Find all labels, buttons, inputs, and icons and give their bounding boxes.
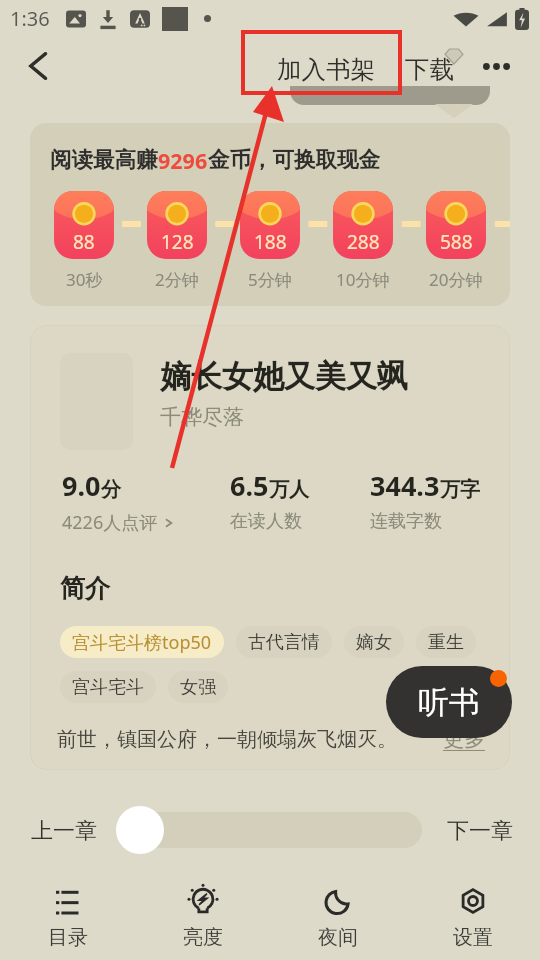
staticText: 夜间	[318, 925, 358, 950]
button[interactable]: More options	[476, 46, 516, 86]
staticText: 金币，可换取现金	[208, 146, 380, 173]
staticText: 宫斗宅斗	[72, 676, 144, 699]
staticText: 嫡女	[356, 631, 392, 654]
staticText: 128	[161, 229, 194, 255]
button[interactable]: 更多	[443, 726, 485, 752]
button[interactable]: 宫斗宅斗榜top50	[60, 626, 224, 658]
button[interactable]: 宫斗宅斗	[60, 671, 156, 703]
staticText: 588	[440, 229, 473, 255]
staticText: 20分钟	[429, 268, 483, 291]
staticText: 阅读最高赚	[50, 146, 158, 173]
staticText: 目录	[48, 925, 88, 950]
button[interactable]: 目录	[0, 880, 135, 958]
button[interactable]: 古代言情	[236, 626, 332, 658]
staticText: 加入书架	[277, 54, 375, 85]
button[interactable]: 下载	[399, 46, 460, 93]
staticText: 千桦尽落	[160, 404, 244, 430]
staticText: 10分钟	[336, 268, 390, 291]
staticText: 分	[101, 477, 121, 502]
button[interactable]: 嫡女	[344, 626, 404, 658]
button[interactable]: 阅读最高赚	[30, 123, 510, 306]
button[interactable]: 夜间	[270, 880, 405, 958]
staticText: 女强	[180, 676, 216, 699]
button[interactable]: 女强	[168, 671, 228, 703]
staticText: 在读人数	[230, 510, 302, 533]
staticText: 9.0	[62, 467, 101, 504]
button[interactable]: 下一章	[441, 811, 519, 851]
staticText: 上一章	[31, 817, 97, 845]
staticText: 288	[347, 229, 380, 255]
staticText: 连载字数	[370, 510, 442, 533]
staticText: 简介	[60, 573, 110, 604]
staticText: 下一章	[447, 817, 513, 845]
staticText: 万字	[440, 477, 480, 502]
staticText: 亮度	[183, 925, 223, 950]
button[interactable]: 上一章	[25, 811, 103, 851]
staticText: 5分钟	[248, 268, 292, 291]
staticText: 188	[254, 229, 287, 255]
staticText: 万人	[269, 477, 309, 502]
button[interactable]: 设置	[405, 880, 540, 958]
staticText: 6.5	[230, 467, 269, 504]
staticText: 古代言情	[248, 631, 320, 654]
staticText: 重生	[428, 631, 464, 654]
staticText: 嫡长女她又美又飒	[160, 357, 408, 396]
staticText: 88	[73, 229, 95, 255]
staticText: 344.3	[370, 467, 440, 504]
staticText: 前世，镇国公府，一朝倾塌灰飞烟灭。	[57, 727, 397, 752]
button[interactable]: 亮度	[135, 880, 270, 958]
button[interactable]: 重生	[416, 626, 476, 658]
staticText: 9296	[158, 146, 208, 175]
staticText: 设置	[453, 925, 493, 950]
staticText: 4226人点评	[62, 510, 158, 535]
staticText: 宫斗宅斗榜top50	[72, 630, 212, 655]
staticText: 2分钟	[155, 268, 199, 291]
button[interactable]: Chapter progress	[116, 806, 164, 854]
button[interactable]: 加入书架	[271, 46, 381, 93]
staticText: 下载	[405, 54, 454, 85]
staticText: 听书	[418, 683, 480, 722]
staticText: 30秒	[66, 268, 103, 291]
staticText: 1:36	[10, 5, 50, 32]
button[interactable]: Back	[18, 46, 58, 86]
button[interactable]: 听书	[386, 666, 512, 738]
